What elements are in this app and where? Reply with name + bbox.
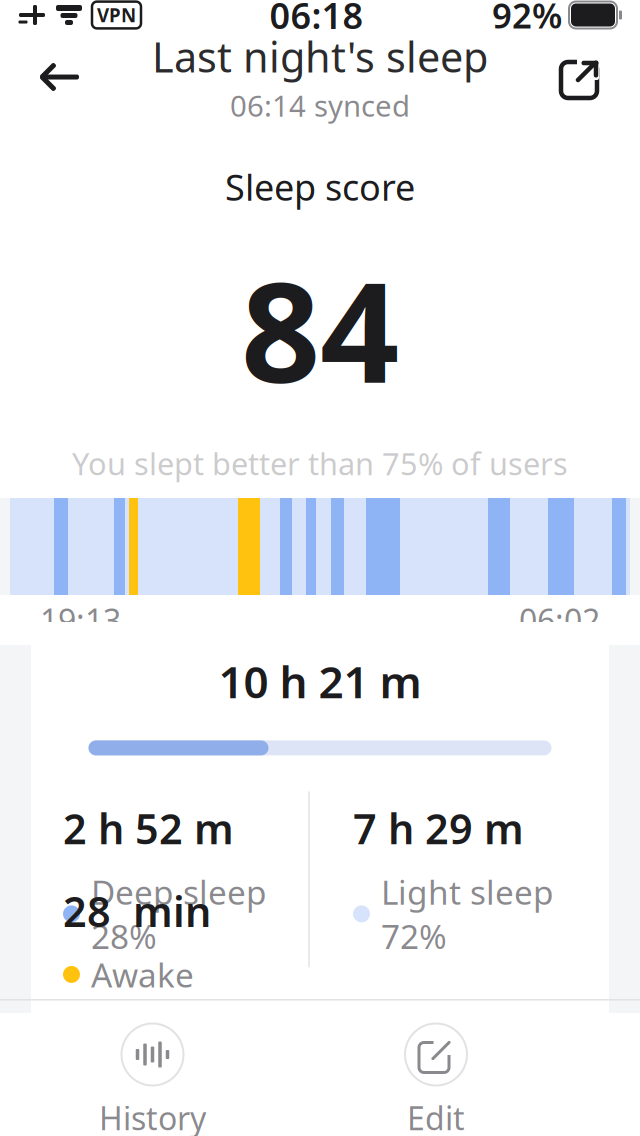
staticText: 06:02 [519, 599, 600, 641]
staticText: 7 h 29 m [353, 801, 524, 856]
staticText: 2 h 52 m [63, 801, 234, 856]
staticText: VPN [97, 3, 136, 27]
staticText: 92% [492, 0, 562, 38]
staticText: You slept better than 75% of users [72, 443, 568, 484]
staticText: 06:18 [269, 0, 363, 39]
staticText: Edit [407, 1096, 465, 1136]
staticText: History [99, 1096, 206, 1136]
staticText: Last night's sleep [152, 29, 488, 84]
staticText: Awake [91, 952, 194, 997]
staticText: Light sleep 72% [381, 870, 554, 958]
staticText: 10 h 21 m [218, 652, 421, 710]
staticText: Sleep score [225, 163, 415, 211]
button[interactable]: Back [22, 45, 98, 109]
staticText: 28 min [63, 883, 211, 938]
button[interactable]: Share [544, 46, 618, 108]
button[interactable]: Edit [378, 1014, 494, 1136]
staticText: 06:14 synced [230, 86, 410, 125]
button[interactable]: History [73, 1014, 232, 1136]
staticText: 84 [241, 237, 399, 421]
staticText: Deep sleep 28% [91, 870, 267, 958]
staticText: 19:13 [40, 599, 121, 641]
